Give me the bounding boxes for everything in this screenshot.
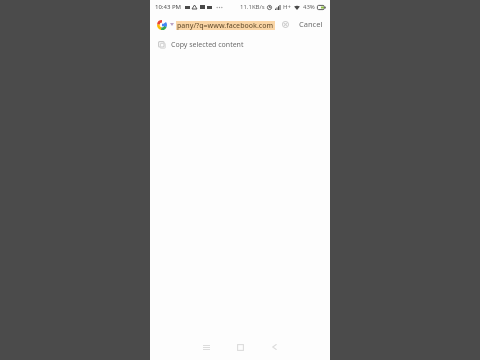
button[interactable]: Clear [279, 18, 292, 31]
button[interactable]: Recent apps [196, 337, 216, 357]
staticText: 10:43 PM [155, 3, 182, 11]
staticText: Copy selected content [171, 40, 244, 50]
button[interactable]: Search engine [155, 18, 168, 31]
staticText: 11.1KB/s [240, 3, 265, 11]
staticText: 43% [303, 3, 315, 11]
button[interactable]: Back [264, 337, 284, 357]
staticText: Cancel [299, 19, 323, 29]
button[interactable]: Copy selected content [150, 37, 330, 53]
button[interactable]: Home [230, 337, 250, 357]
button[interactable]: Cancel [296, 16, 326, 32]
staticText: H+ [283, 3, 291, 11]
staticText: pany/?q=www.facebook.com [177, 21, 274, 30]
